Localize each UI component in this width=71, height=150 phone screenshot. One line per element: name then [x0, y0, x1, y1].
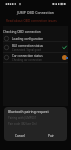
staticText: JUMP OBD Connection [17, 10, 54, 15]
staticText: Car connection status [12, 54, 43, 58]
button[interactable]: BLE connection status [0, 43, 71, 52]
button[interactable]: Car connection status [0, 53, 71, 62]
button[interactable]: Pair [35, 131, 67, 141]
button[interactable]: Loading configuration [0, 34, 71, 43]
other: Pending [62, 55, 67, 60]
staticText: Cancel [15, 134, 25, 138]
staticText: Loading configuration [12, 37, 44, 41]
staticText: Checking car connection [12, 58, 42, 62]
staticText: Pair [48, 134, 54, 138]
staticText: Pairing with JUMP001 [8, 116, 37, 120]
staticText: Checking OBD connection [3, 30, 41, 34]
staticText: BLE connection status [12, 44, 43, 48]
other: Connected [62, 45, 67, 50]
staticText: Pair code 382(see On) [8, 122, 37, 126]
button[interactable]: Read about OBD connection issues [0, 17, 71, 25]
button[interactable]: JUMP OBD Connection [0, 8, 71, 17]
staticText: Connected. Signal good [12, 48, 41, 52]
staticText: Bluetooth pairing request [8, 109, 49, 113]
staticText: Read about OBD connection issues [6, 19, 57, 23]
button[interactable]: Cancel [4, 131, 35, 141]
